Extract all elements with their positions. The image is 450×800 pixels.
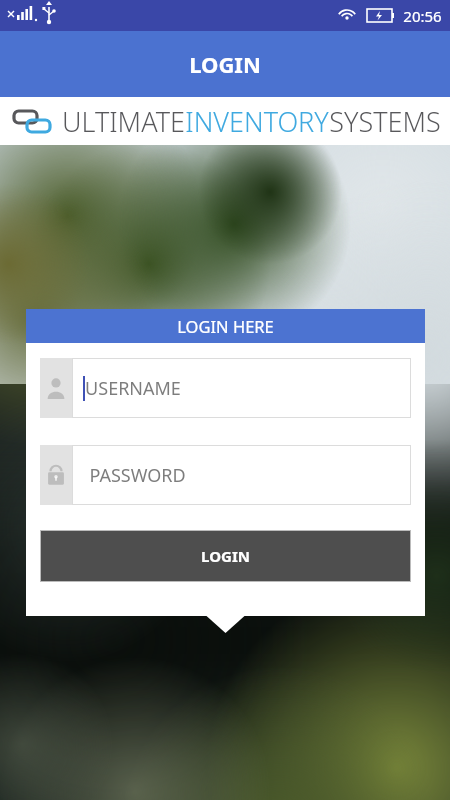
button[interactable]: LOGIN bbox=[0, 31, 450, 97]
staticText: PASSWORD bbox=[89, 463, 186, 488]
button[interactable]: LOGIN bbox=[40, 530, 411, 582]
button[interactable]: USERNAME bbox=[40, 358, 411, 418]
staticText: LOGIN bbox=[189, 49, 261, 79]
other: Ultimate Inventory Systems logo bbox=[0, 97, 450, 145]
staticText: SYSTEMS bbox=[329, 103, 441, 140]
button[interactable]: PASSWORD bbox=[40, 445, 411, 505]
staticText: 20:56 bbox=[403, 6, 442, 26]
staticText: USERNAME bbox=[85, 376, 181, 401]
staticText: LOGIN HERE bbox=[177, 315, 274, 337]
staticText: INVENTORY bbox=[185, 103, 329, 140]
staticText: ULTIMATE bbox=[62, 103, 185, 140]
staticText: LOGIN bbox=[201, 546, 250, 566]
button[interactable]: LOGIN HERE bbox=[26, 309, 425, 343]
